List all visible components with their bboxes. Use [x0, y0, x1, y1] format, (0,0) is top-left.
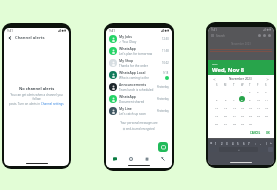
staticText: 16: [249, 106, 252, 109]
staticText: 6: [225, 98, 227, 101]
staticText: 7: [233, 98, 235, 101]
staticText: WhatsApp: [119, 94, 136, 99]
button[interactable]: My Shop: [106, 57, 172, 69]
staticText: Thanks for the order: [119, 64, 148, 68]
staticText: 24: [257, 114, 260, 117]
staticText: 13: [224, 106, 227, 109]
staticText: Wed, Nov 8: [212, 66, 245, 74]
staticText: 11: [265, 98, 268, 101]
staticText: 14: [233, 106, 236, 109]
button[interactable]: Communities: [140, 154, 154, 163]
staticText: 3: [257, 90, 259, 93]
staticText: Yesterday: [157, 85, 169, 89]
other: Previous month: [213, 78, 216, 81]
staticText: 5: [237, 142, 239, 146]
button[interactable]: My Jobs: [106, 33, 172, 45]
staticText: 20: [224, 114, 227, 117]
staticText: Announcements: [119, 82, 147, 87]
other: Next month: [266, 78, 269, 81]
button[interactable]: New chat: [158, 142, 168, 152]
staticText: 3: [226, 142, 228, 146]
staticText: Document shared: [119, 100, 145, 104]
staticText: 9: [249, 98, 251, 101]
staticText: My Jobs: [119, 34, 132, 39]
staticText: S: [265, 83, 267, 87]
button[interactable]: WhatsApp: [106, 93, 172, 105]
staticText: T: [233, 83, 235, 87]
button[interactable]: OK: [265, 131, 271, 135]
button[interactable]: Chats: [108, 154, 122, 163]
staticText: /: [266, 142, 267, 146]
staticText: W: [241, 83, 244, 87]
staticText: Let's catch up soon: [119, 112, 146, 116]
staticText: posts. Turn on alerts in: [9, 102, 41, 106]
staticText: T: [249, 83, 251, 87]
staticText: end-to-end encrypted: [126, 127, 155, 131]
staticText: 29: [241, 122, 244, 125]
staticText: 11:58: [162, 49, 169, 53]
staticText: 17: [257, 106, 260, 109]
staticText: 10: [257, 98, 260, 101]
staticText: Channel alerts: [15, 35, 45, 41]
staticText: OK: [266, 131, 270, 135]
staticText: 19: [215, 114, 218, 117]
staticText: 9:41: [109, 29, 115, 33]
staticText: 18: [265, 106, 268, 109]
staticText: WhatsApp: [119, 46, 136, 51]
staticText: 4: [265, 90, 267, 93]
staticText: Who is coming to the: [119, 76, 149, 80]
staticText: 8: [241, 98, 243, 101]
staticText: 26: [215, 122, 218, 125]
staticText: 5: [216, 98, 218, 101]
staticText: You can get alerts when a channel you fo…: [8, 93, 65, 101]
staticText: 12:30: [162, 37, 169, 41]
staticText: Team lunch is scheduled: [119, 88, 154, 92]
staticText: 22: [241, 114, 244, 117]
staticText: 9:41: [7, 29, 13, 33]
staticText: 9:18: [163, 71, 169, 75]
staticText: -: [260, 142, 261, 146]
staticText: 1: [215, 142, 217, 146]
staticText: ␣: [238, 148, 240, 151]
staticText: :: [255, 142, 256, 146]
staticText: Let's plan for tomorrow: [119, 52, 153, 56]
staticText: Channel settings: [41, 102, 64, 106]
staticText: 28: [233, 122, 236, 125]
staticText: 27: [224, 122, 227, 125]
staticText: 9:41: [211, 28, 217, 32]
staticText: No channel alerts: [19, 86, 55, 91]
staticText: WhatsApp Local: [119, 70, 146, 75]
staticText: My Shop: [119, 58, 134, 63]
staticText: 21: [233, 114, 236, 117]
button[interactable]: Calls: [156, 154, 170, 163]
staticText: 12: [215, 106, 218, 109]
staticText: November 2023: [229, 77, 252, 81]
button[interactable]: WhatsApp: [106, 45, 172, 57]
staticText: 7: [248, 142, 250, 146]
staticText: November 2023: [208, 42, 274, 46]
staticText: ⚙: [210, 142, 213, 145]
staticText: 2023: [212, 62, 218, 65]
staticText: 25: [265, 114, 268, 117]
staticText: Yesterday: [157, 109, 169, 113]
staticText: 4: [232, 142, 234, 146]
staticText: F: [257, 83, 259, 87]
staticText: 23: [249, 114, 252, 117]
staticText: Your personal messages are: [120, 121, 158, 125]
staticText: CANCEL: [250, 131, 261, 135]
button[interactable]: Updates: [124, 154, 138, 163]
button[interactable]: Back: [7, 35, 13, 41]
staticText: My Line: [119, 106, 132, 111]
staticText: S: [216, 83, 218, 87]
button[interactable]: WhatsApp Local: [106, 69, 172, 81]
staticText: ✓ You: Okay: [119, 40, 137, 44]
button[interactable]: CANCEL: [249, 131, 262, 135]
staticText: 2: [249, 90, 251, 93]
staticText: ←: [270, 142, 273, 145]
staticText: M: [224, 83, 227, 87]
staticText: 10:02: [162, 61, 169, 65]
button[interactable]: My Line: [106, 105, 172, 117]
button[interactable]: Announcements: [106, 81, 172, 93]
staticText: 15: [241, 106, 244, 109]
staticText: 2: [221, 142, 223, 146]
